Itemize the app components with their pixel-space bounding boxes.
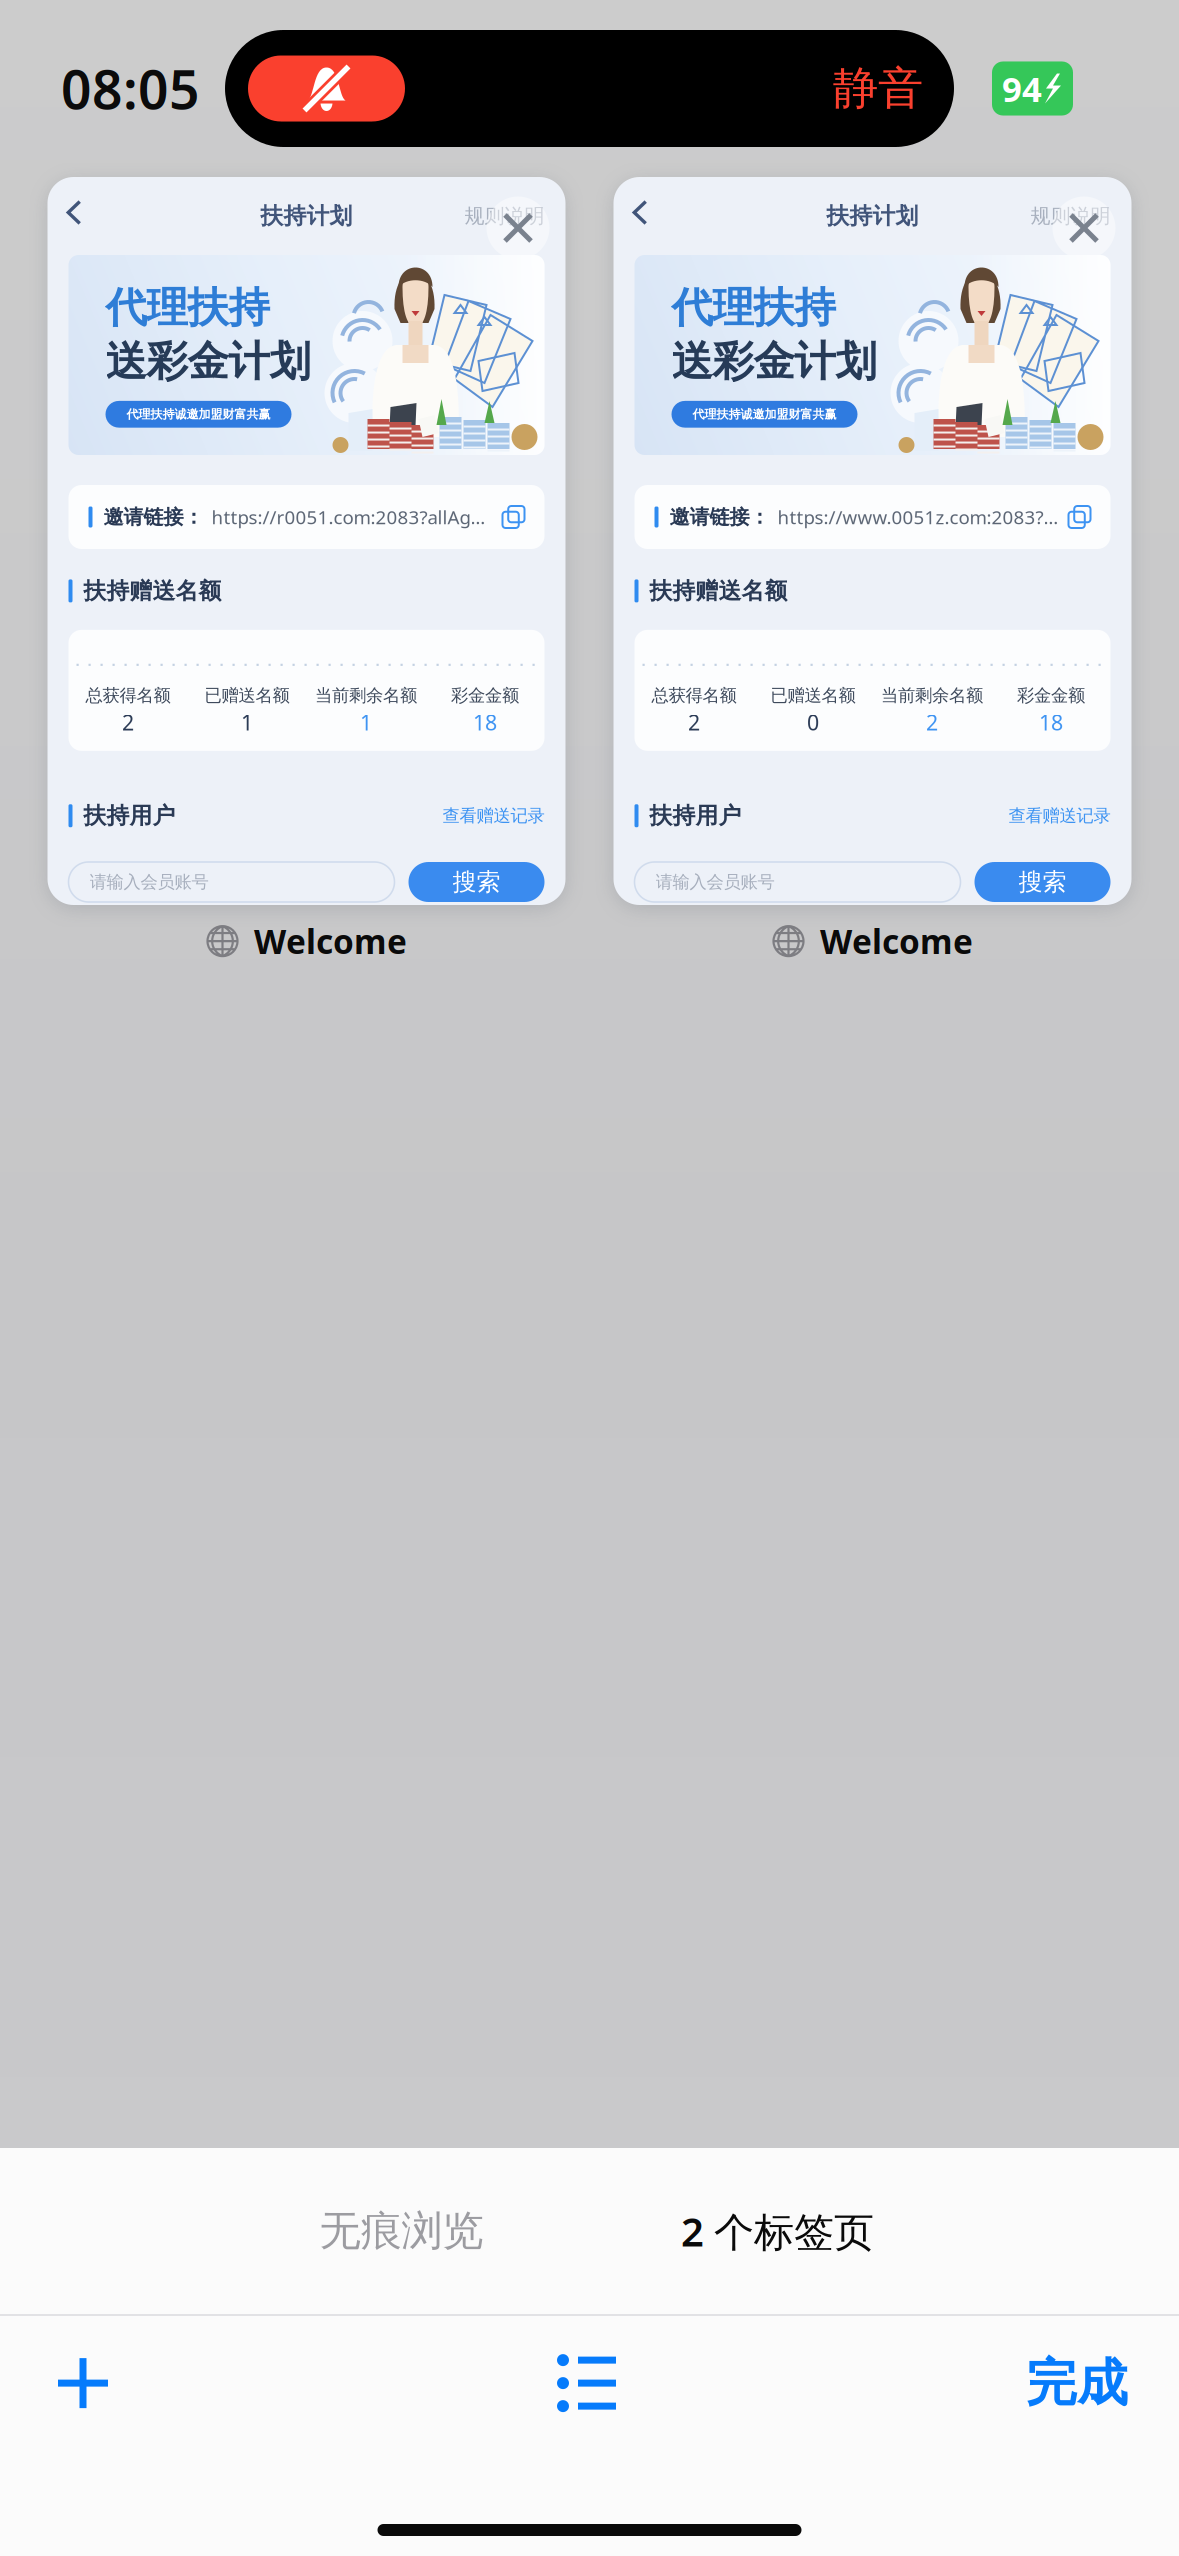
staticText: 2: [122, 708, 134, 736]
staticText: 请输入会员账号: [89, 871, 208, 893]
staticText: 94: [1002, 65, 1042, 111]
button[interactable]: 扶持计划: [613, 177, 1131, 905]
staticText: 当前剩余名额: [881, 685, 983, 706]
staticText: 扶持计划: [826, 202, 918, 230]
staticText: 完成: [1026, 2352, 1128, 2414]
staticText: 已赠送名额: [770, 685, 855, 706]
staticText: 邀请链接：: [669, 505, 769, 529]
staticText: 2: [688, 708, 700, 736]
staticText: 邀请链接：: [103, 505, 203, 529]
staticText: 搜索: [1018, 867, 1066, 897]
staticText: 查看赠送记录: [442, 805, 544, 826]
staticText: 规则说明: [1030, 204, 1110, 228]
staticText: 扶持赠送名额: [83, 577, 221, 605]
staticText: 扶持计划: [260, 202, 352, 230]
staticText: 代理扶持: [671, 282, 835, 333]
staticText: 代理扶持: [105, 282, 269, 333]
staticText: 扶持赠送名额: [649, 577, 787, 605]
staticText: 总获得名额: [651, 685, 736, 706]
button[interactable]: New Tab: [27, 2333, 139, 2433]
staticText: 规则说明: [464, 204, 544, 228]
staticText: 2: [926, 708, 938, 736]
staticText: 静音: [833, 61, 923, 116]
staticText: 18: [473, 708, 497, 736]
staticText: 彩金金额: [451, 685, 519, 706]
button[interactable]: 扶持计划: [47, 177, 565, 905]
staticText: 送彩金计划: [671, 336, 876, 387]
button[interactable]: 2 个标签页: [630, 2176, 925, 2286]
staticText: https://www.0051z.com:2083?allA…: [777, 505, 1060, 529]
staticText: 代理扶持诚邀加盟财富共赢: [692, 407, 836, 422]
button[interactable]: Tab Groups: [527, 2332, 648, 2434]
staticText: 代理扶持诚邀加盟财富共赢: [126, 407, 270, 422]
staticText: 当前剩余名额: [315, 685, 417, 706]
staticText: 1: [360, 708, 372, 736]
staticText: 扶持用户: [83, 802, 175, 830]
staticText: 2 个标签页: [681, 2204, 874, 2257]
staticText: 送彩金计划: [105, 336, 310, 387]
staticText: 08:05: [61, 53, 200, 124]
staticText: 总获得名额: [85, 685, 170, 706]
staticText: 彩金金额: [1017, 685, 1085, 706]
staticText: 扶持用户: [649, 802, 741, 830]
staticText: 18: [1039, 708, 1063, 736]
staticText: 请输入会员账号: [655, 871, 774, 893]
button[interactable]: 完成: [1002, 2330, 1152, 2436]
button[interactable]: 无痕浏览: [254, 2176, 549, 2286]
staticText: 1: [241, 708, 253, 736]
staticText: Welcome: [254, 919, 407, 963]
staticText: https://r0051.com:2083?allAgent=…: [211, 505, 494, 529]
staticText: 无痕浏览: [319, 2206, 483, 2256]
staticText: 搜索: [452, 867, 500, 897]
staticText: 查看赠送记录: [1008, 805, 1110, 826]
staticText: 已赠送名额: [204, 685, 289, 706]
staticText: Welcome: [820, 919, 973, 963]
staticText: 0: [807, 708, 819, 736]
